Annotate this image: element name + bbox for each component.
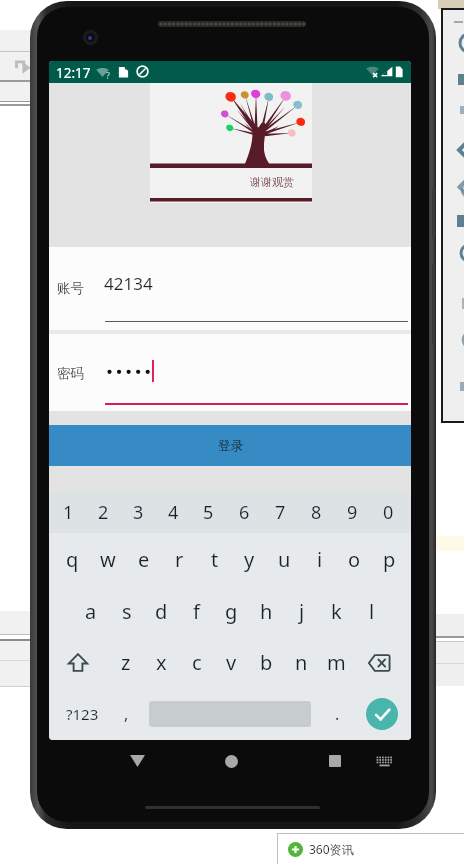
button[interactable]: 6 — [226, 492, 262, 533]
staticText: m — [327, 649, 346, 676]
button[interactable]: h — [249, 585, 284, 637]
staticText: 360资讯 — [309, 841, 354, 857]
staticText: 谢谢观赏 — [250, 175, 294, 189]
button[interactable]: d — [144, 585, 179, 637]
button[interactable]: Home — [201, 740, 261, 782]
button[interactable]: m — [319, 637, 354, 688]
button[interactable]: 1 — [51, 492, 86, 533]
staticText: k — [331, 598, 342, 625]
staticText: n — [295, 649, 308, 676]
staticText: ?123 — [66, 704, 99, 724]
button[interactable]: Backspace — [354, 637, 407, 688]
staticText: 7 — [275, 500, 286, 525]
button[interactable]: o — [337, 533, 372, 585]
staticText: 5 — [203, 500, 214, 525]
staticText: 登录 — [218, 438, 243, 454]
staticText: a — [85, 598, 97, 625]
staticText: s — [122, 598, 132, 625]
button[interactable]: t — [197, 533, 232, 585]
button[interactable]: w — [90, 533, 126, 585]
button[interactable]: 5 — [191, 492, 226, 533]
staticText: . — [335, 703, 340, 725]
staticText: f — [193, 598, 200, 625]
button[interactable]: 密码 — [57, 365, 84, 382]
staticText: h — [260, 598, 273, 625]
button[interactable]: 账号 — [57, 280, 84, 297]
staticText: 1 — [63, 500, 74, 525]
button[interactable]: s — [109, 585, 144, 637]
button[interactable]: a — [73, 585, 109, 637]
staticText: 12:17 — [56, 64, 91, 82]
staticText: 3 — [133, 500, 144, 525]
button[interactable]: z — [108, 637, 144, 688]
button[interactable]: 3 — [121, 492, 156, 533]
button[interactable]: 2 — [86, 492, 121, 533]
staticText: j — [299, 598, 305, 625]
staticText: q — [66, 546, 79, 573]
button[interactable]: f — [179, 585, 214, 637]
staticText: l — [369, 598, 375, 625]
button[interactable]: r — [162, 533, 197, 585]
staticText: 42134 — [104, 272, 153, 295]
button[interactable]: k — [319, 585, 354, 637]
staticText: 9 — [347, 500, 358, 525]
staticText: 6 — [239, 500, 250, 525]
button[interactable] — [49, 247, 411, 411]
staticText: d — [155, 598, 168, 625]
staticText: r — [175, 546, 184, 573]
button[interactable]: x — [144, 637, 179, 688]
staticText: u — [278, 546, 291, 573]
button[interactable]: p — [372, 533, 407, 585]
staticText: , — [124, 703, 129, 725]
button[interactable]: e — [126, 533, 162, 585]
staticText: z — [121, 649, 131, 676]
button[interactable]: g — [214, 585, 249, 637]
button[interactable]: y — [232, 533, 267, 585]
button[interactable]: , — [106, 688, 146, 740]
staticText: t — [211, 546, 219, 573]
button[interactable]: ?123 — [58, 688, 106, 740]
button[interactable]: Recents — [305, 740, 365, 782]
staticText: g — [225, 598, 238, 625]
staticText: x — [156, 649, 167, 676]
button[interactable]: i — [302, 533, 337, 585]
staticText: 8 — [311, 500, 322, 525]
button[interactable]: n — [284, 637, 319, 688]
staticText: b — [260, 649, 273, 676]
staticText: 0 — [383, 500, 394, 525]
button[interactable]: u — [267, 533, 302, 585]
staticText: p — [383, 546, 396, 573]
button[interactable]: j — [284, 585, 319, 637]
staticText: c — [192, 649, 202, 676]
button[interactable]: 7 — [262, 492, 298, 533]
staticText: e — [138, 546, 150, 573]
button[interactable]: l — [354, 585, 389, 637]
button[interactable]: 登录 — [49, 425, 411, 466]
button[interactable]: b — [249, 637, 284, 688]
staticText: o — [348, 546, 361, 573]
button[interactable]: Shift — [54, 637, 108, 688]
staticText: i — [317, 546, 323, 573]
button[interactable]: c — [179, 637, 214, 688]
staticText: 2 — [98, 500, 109, 525]
staticText: w — [100, 546, 116, 573]
button[interactable]: Back — [107, 740, 167, 782]
button[interactable]: Switch keyboard — [357, 740, 411, 782]
staticText: v — [226, 649, 237, 676]
staticText: ? — [106, 69, 110, 81]
staticText: y — [244, 546, 255, 573]
staticText: 4 — [168, 500, 179, 525]
button[interactable]: Enter — [366, 698, 398, 730]
button[interactable]: v — [214, 637, 249, 688]
button[interactable]: 0 — [370, 492, 406, 533]
button[interactable]: 8 — [298, 492, 334, 533]
button[interactable]: 4 — [156, 492, 191, 533]
button[interactable]: 9 — [334, 492, 370, 533]
button[interactable]: q — [54, 533, 90, 585]
button[interactable]: . — [317, 688, 357, 740]
